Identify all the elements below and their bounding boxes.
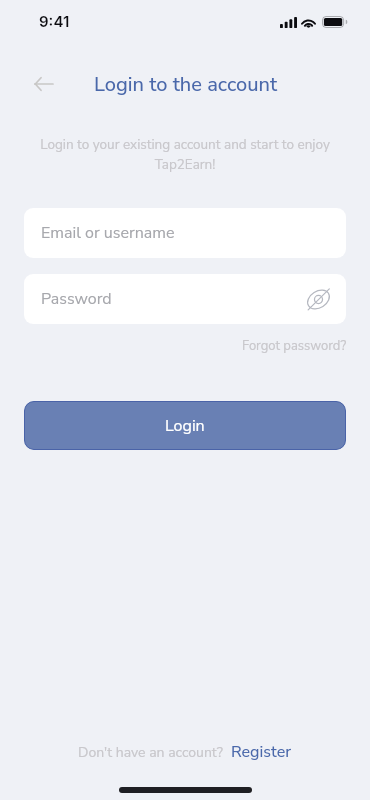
- staticText: Login: [165, 415, 205, 437]
- staticText: Password: [41, 288, 112, 310]
- button[interactable]: Register: [231, 741, 292, 763]
- button[interactable]: Login: [24, 401, 346, 450]
- staticText: 9:41: [39, 12, 70, 30]
- staticText: Login to the account: [94, 71, 278, 98]
- staticText: Email or username: [41, 222, 175, 244]
- button[interactable]: Email or username: [24, 208, 346, 258]
- button[interactable]: Show password: [303, 284, 333, 314]
- staticText: Login to your existing account and start…: [20, 135, 350, 174]
- button[interactable]: Password: [24, 274, 346, 324]
- button[interactable]: Forgot password?: [242, 337, 347, 355]
- button[interactable]: Back: [27, 68, 59, 100]
- staticText: Don't have an account?: [78, 743, 223, 762]
